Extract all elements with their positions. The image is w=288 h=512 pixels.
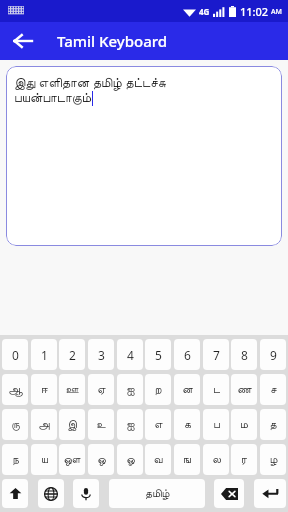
button[interactable]: Shift (2, 479, 28, 508)
staticText: இது எளிதான தமிழ் தட்டச்சு (14, 73, 167, 91)
button[interactable]: ச (260, 374, 286, 405)
button[interactable]: ஒ (88, 444, 114, 475)
staticText: 7 (213, 347, 220, 363)
staticText: வ (153, 454, 163, 465)
staticText: ஐ (126, 419, 135, 430)
button[interactable]: 5 (145, 339, 171, 370)
button[interactable]: ற (145, 374, 171, 405)
staticText: ர (241, 454, 247, 465)
staticText: த (269, 419, 277, 430)
staticText: ழ (269, 454, 278, 465)
button[interactable]: 8 (231, 339, 257, 370)
button[interactable]: ண (231, 374, 257, 405)
staticText: ஆ (8, 384, 23, 395)
button[interactable]: ப (203, 409, 229, 440)
staticText: 2 (69, 347, 76, 363)
button[interactable]: ஈ (31, 374, 57, 405)
button[interactable]: ம (231, 409, 257, 440)
button[interactable]: எ (145, 409, 171, 440)
button[interactable]: ந (2, 444, 28, 475)
button[interactable]: ஐ (117, 374, 143, 405)
button[interactable]: க (174, 409, 200, 440)
staticText: பயன்பாடாகும் (14, 92, 92, 105)
button[interactable]: 1 (31, 339, 57, 370)
staticText: 11:02 (240, 4, 269, 19)
button[interactable]: ழ (260, 444, 286, 475)
staticText: 4G (199, 6, 210, 17)
button[interactable]: Enter (254, 479, 286, 508)
staticText: ல (212, 454, 221, 465)
staticText: ஔ (63, 454, 81, 465)
button[interactable]: இது எளிதான தமிழ் தட்டச்சு (6, 66, 282, 246)
staticText: ஊ (65, 384, 79, 395)
staticText: Tamil Keyboard (57, 31, 168, 51)
staticText: உ (96, 419, 106, 430)
staticText: 9 (270, 347, 277, 363)
button[interactable]: ரு (2, 409, 28, 440)
button[interactable]: ன (174, 374, 200, 405)
button[interactable]: 2 (59, 339, 85, 370)
staticText: 4 (127, 347, 134, 363)
staticText: ட (213, 384, 220, 395)
button[interactable]: 7 (203, 339, 229, 370)
button[interactable]: ர (231, 444, 257, 475)
button[interactable]: ய (31, 444, 57, 475)
button[interactable]: ஔ (59, 444, 85, 475)
button[interactable]: உ (88, 409, 114, 440)
button[interactable]: ஊ (59, 374, 85, 405)
staticText: ன (182, 384, 193, 395)
staticText: AM (271, 7, 283, 17)
button[interactable]: ட (203, 374, 229, 405)
staticText: க (184, 419, 191, 430)
button[interactable]: 4 (117, 339, 143, 370)
button[interactable]: ஓ (117, 444, 143, 475)
button[interactable]: த (260, 409, 286, 440)
button[interactable]: Change language (38, 479, 64, 508)
button[interactable]: அ (31, 409, 57, 440)
button[interactable]: 6 (174, 339, 200, 370)
button[interactable]: Back (7, 25, 39, 57)
button[interactable]: தமிழ் (109, 479, 205, 508)
staticText: 8 (241, 347, 248, 363)
staticText: ங (183, 454, 191, 465)
staticText: 0 (12, 347, 19, 363)
button[interactable]: Backspace (214, 479, 244, 508)
button[interactable]: 0 (2, 339, 28, 370)
staticText: ந (12, 454, 19, 465)
staticText: ற (154, 384, 162, 395)
staticText: ரு (11, 419, 20, 430)
staticText: ண (237, 384, 252, 395)
staticText: ய (41, 454, 48, 465)
staticText: ஒ (97, 454, 106, 465)
button[interactable]: ல (203, 444, 229, 475)
button[interactable]: ஆ (2, 374, 28, 405)
button[interactable]: ஐ (117, 409, 143, 440)
staticText: ஓ (126, 454, 135, 465)
staticText: ஐ (126, 384, 135, 395)
staticText: 6 (184, 347, 191, 363)
staticText: இ (67, 419, 77, 430)
button[interactable]: 9 (260, 339, 286, 370)
staticText: ம (240, 419, 248, 430)
staticText: ச (270, 384, 277, 395)
button[interactable]: ஏ (88, 374, 114, 405)
staticText: 3 (98, 347, 105, 363)
staticText: எ (154, 419, 163, 430)
staticText: 5 (155, 347, 162, 363)
staticText: ஈ (41, 384, 48, 395)
button[interactable]: Voice input (73, 479, 99, 508)
staticText: அ (38, 419, 50, 430)
button[interactable]: ங (174, 444, 200, 475)
staticText: தமிழ் (145, 488, 170, 499)
button[interactable]: 3 (88, 339, 114, 370)
button[interactable]: வ (145, 444, 171, 475)
staticText: ப (213, 419, 220, 430)
button[interactable]: இ (59, 409, 85, 440)
staticText: 1 (41, 347, 48, 363)
staticText: ஏ (97, 384, 106, 395)
